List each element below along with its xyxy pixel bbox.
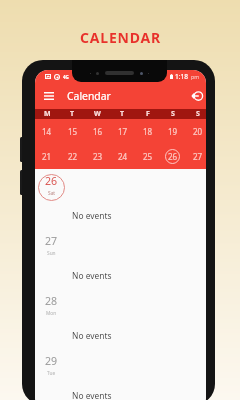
staticText: Tue [47, 370, 56, 377]
staticText: Sat [48, 190, 56, 197]
button[interactable]: 26 [35, 169, 206, 229]
staticText: S [171, 109, 175, 119]
staticText: 23 [93, 151, 103, 162]
button[interactable]: 28 [35, 289, 206, 349]
staticText: 14 [42, 126, 52, 137]
button[interactable]: 15 [60, 119, 85, 144]
staticText: 25 [143, 151, 153, 162]
staticText: T [70, 109, 75, 119]
staticText: 1:18 [175, 72, 189, 81]
staticText: 27 [45, 234, 58, 248]
staticText: W [94, 109, 101, 119]
button[interactable]: Open navigation menu [40, 87, 58, 105]
button[interactable]: 17 [110, 119, 135, 144]
staticText: 20 [193, 126, 203, 137]
staticText: 4G [63, 74, 69, 80]
staticText: 24 [118, 151, 128, 162]
staticText: 18 [143, 126, 153, 137]
staticText: M [44, 109, 51, 119]
staticText: 17 [118, 126, 128, 137]
staticText: T [120, 109, 125, 119]
staticText: S [196, 109, 200, 119]
staticText: Calendar [67, 89, 111, 103]
button[interactable]: 19 [160, 119, 185, 144]
staticText: 21 [42, 151, 52, 162]
button[interactable]: 27 [35, 229, 206, 289]
staticText: 26 [45, 174, 58, 188]
staticText: 19 [168, 126, 178, 137]
button[interactable]: 23 [85, 144, 110, 169]
button[interactable]: 16 [85, 119, 110, 144]
staticText: 22 [68, 151, 78, 162]
staticText: Sun [47, 250, 56, 257]
staticText: 26 [168, 151, 178, 162]
staticText: 15 [68, 126, 78, 137]
staticText: 16 [93, 126, 103, 137]
staticText: 29 [45, 354, 58, 368]
button[interactable]: 20 [185, 119, 206, 144]
staticText: No events [72, 210, 112, 221]
staticText: No events [72, 330, 112, 341]
button[interactable]: 27 [185, 144, 206, 169]
staticText: No events [72, 390, 112, 400]
staticText: CALENDAR [80, 28, 161, 47]
button[interactable]: 14 [35, 119, 60, 144]
button[interactable]: 26 [160, 144, 185, 169]
button[interactable]: 21 [35, 144, 60, 169]
button[interactable]: 24 [110, 144, 135, 169]
staticText: 27 [193, 151, 203, 162]
staticText: Mon [46, 310, 57, 317]
button[interactable]: Logout [188, 88, 203, 103]
staticText: pm [191, 73, 200, 80]
button[interactable]: 22 [60, 144, 85, 169]
staticText: No events [72, 270, 112, 281]
staticText: 28 [45, 294, 58, 308]
button[interactable]: 25 [135, 144, 160, 169]
staticText: F [146, 109, 150, 119]
button[interactable]: 18 [135, 119, 160, 144]
button[interactable]: 29 [35, 349, 206, 400]
